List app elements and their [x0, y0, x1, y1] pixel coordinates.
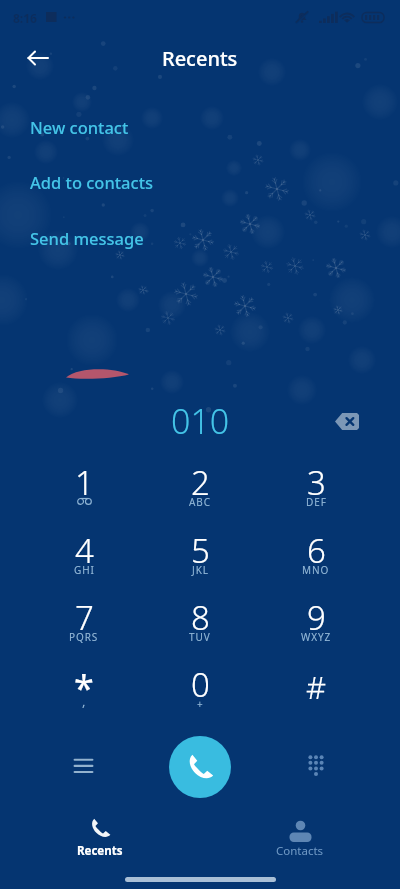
button[interactable]: 1: [32, 454, 136, 512]
staticText: WXYZ: [301, 630, 332, 644]
staticText: MNO: [302, 563, 330, 577]
button[interactable]: 8: [148, 589, 252, 647]
staticText: 5: [191, 528, 210, 573]
button[interactable]: 9: [264, 589, 368, 647]
button[interactable]: 7: [32, 589, 136, 647]
button[interactable]: 6: [264, 522, 368, 580]
button[interactable]: 4: [32, 522, 136, 580]
staticText: 8: [191, 595, 210, 640]
staticText: 2: [191, 460, 210, 505]
staticText: 0: [191, 662, 210, 707]
button[interactable]: *: [32, 656, 136, 714]
button[interactable]: 2: [148, 454, 252, 512]
staticText: 4: [75, 528, 94, 573]
button[interactable]: Back: [14, 34, 62, 82]
staticText: Send message: [30, 227, 144, 249]
staticText: 010: [171, 398, 230, 444]
staticText: *: [74, 663, 94, 712]
button[interactable]: New contact: [0, 105, 400, 149]
staticText: 6: [307, 528, 326, 573]
staticText: +: [197, 697, 204, 711]
staticText: 9: [307, 595, 326, 640]
staticText: ,: [82, 692, 86, 710]
button[interactable]: 0: [148, 656, 252, 714]
staticText: TUV: [189, 630, 211, 644]
staticText: GHI: [74, 563, 95, 577]
staticText: ABC: [189, 495, 211, 509]
button[interactable]: Send message: [0, 216, 400, 260]
staticText: 1: [75, 460, 94, 505]
button[interactable]: Contacts: [240, 812, 360, 862]
button[interactable]: 5: [148, 522, 252, 580]
staticText: Recents: [77, 843, 123, 859]
button[interactable]: Call: [169, 736, 231, 798]
staticText: 7: [75, 595, 94, 640]
button[interactable]: Keypad: [294, 743, 338, 787]
staticText: DEF: [306, 495, 327, 509]
staticText: 3: [307, 460, 326, 505]
staticText: Contacts: [276, 843, 324, 859]
button[interactable]: #: [264, 656, 368, 714]
staticText: PQRS: [69, 630, 99, 644]
staticText: #: [306, 666, 327, 708]
button[interactable]: Add to contacts: [0, 160, 400, 204]
staticText: Add to contacts: [30, 171, 153, 193]
button[interactable]: Backspace: [325, 399, 369, 443]
button[interactable]: 3: [264, 454, 368, 512]
staticText: New contact: [30, 116, 129, 138]
button[interactable]: Recents: [40, 812, 160, 862]
button[interactable]: More options: [61, 743, 105, 787]
staticText: 8:16: [13, 10, 37, 26]
staticText: Recents: [162, 45, 238, 72]
staticText: JKL: [192, 563, 209, 577]
